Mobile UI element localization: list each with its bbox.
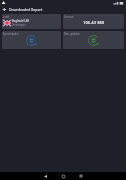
button[interactable]: Back <box>0 5 9 13</box>
staticText: Neu geladen <box>64 32 81 36</box>
staticText: Englisch (UK) <box>12 19 30 23</box>
staticText: Sprachpaket <box>3 32 19 36</box>
button[interactable]: Back <box>36 172 54 180</box>
button[interactable]: Recents <box>72 172 90 180</box>
button[interactable]: Sprachpaket <box>2 31 61 49</box>
staticText: 106.43 MB <box>83 20 104 26</box>
staticText: Vereinigtes <box>12 23 26 27</box>
button[interactable]: Version <box>63 14 124 29</box>
button[interactable]: Neu geladen <box>63 31 124 49</box>
staticText: Land <box>3 15 10 19</box>
button[interactable]: Land <box>2 14 61 29</box>
staticText: Downloaded Report <box>9 7 43 12</box>
staticText: Version <box>64 15 74 19</box>
button[interactable]: Home <box>54 172 72 180</box>
